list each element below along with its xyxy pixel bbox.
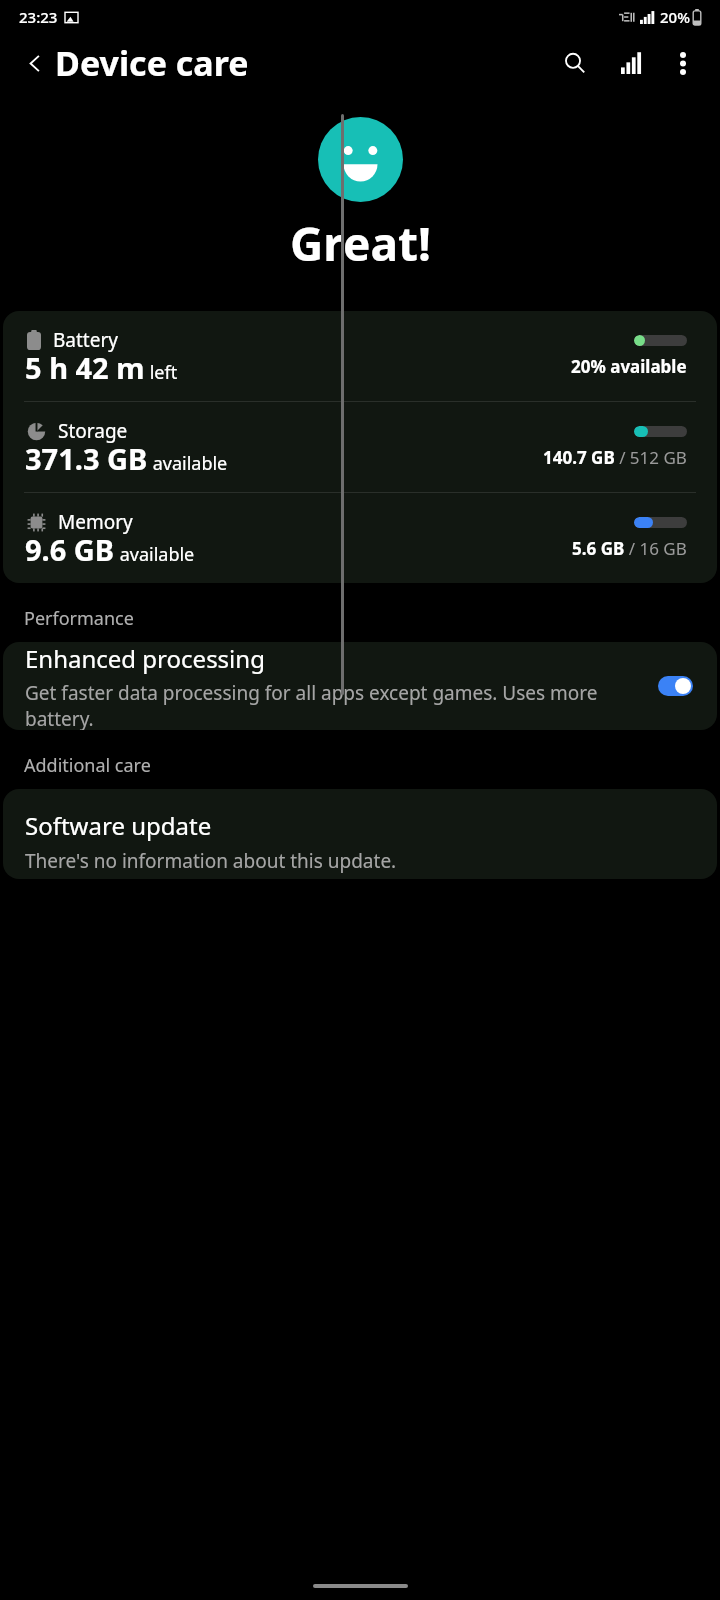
staticText: Enhanced processing [25, 642, 265, 675]
button[interactable]: Enhanced processing toggle [658, 676, 693, 696]
button[interactable]: Software update [3, 789, 717, 879]
button[interactable]: More options [660, 40, 706, 86]
staticText: There's no information about this update… [25, 848, 397, 874]
staticText: 5.6 GB / 16 GB [572, 537, 687, 560]
staticText: 371.3 GB [25, 439, 148, 478]
staticText: Performance [24, 606, 134, 631]
staticText: Storage [58, 418, 128, 444]
button[interactable]: Memory [3, 493, 717, 583]
staticText: 5 h 42 m [25, 348, 145, 387]
staticText: available [115, 542, 195, 567]
staticText: Great! [290, 212, 431, 275]
button[interactable]: Battery [3, 311, 717, 401]
button[interactable]: Search [552, 40, 598, 86]
staticText: 9.6 GB [25, 530, 115, 569]
staticText: Battery [53, 327, 118, 353]
staticText: 23:23 [19, 7, 58, 27]
staticText: 20% [660, 7, 690, 27]
staticText: Device care [55, 40, 249, 86]
staticText: 140.7 GB / 512 GB [543, 446, 687, 469]
button[interactable]: Usage statistics [608, 40, 654, 86]
staticText: Software update [25, 809, 212, 842]
staticText: Additional care [24, 753, 151, 778]
staticText: Memory [58, 509, 133, 535]
button[interactable]: Back [14, 42, 56, 84]
staticText: 20% available [571, 355, 687, 378]
staticText: Get faster data processing for all apps … [25, 680, 607, 730]
button[interactable]: Storage [3, 402, 717, 492]
staticText: available [148, 451, 228, 476]
button[interactable]: Enhanced processing [3, 642, 717, 730]
staticText: left [145, 360, 178, 385]
